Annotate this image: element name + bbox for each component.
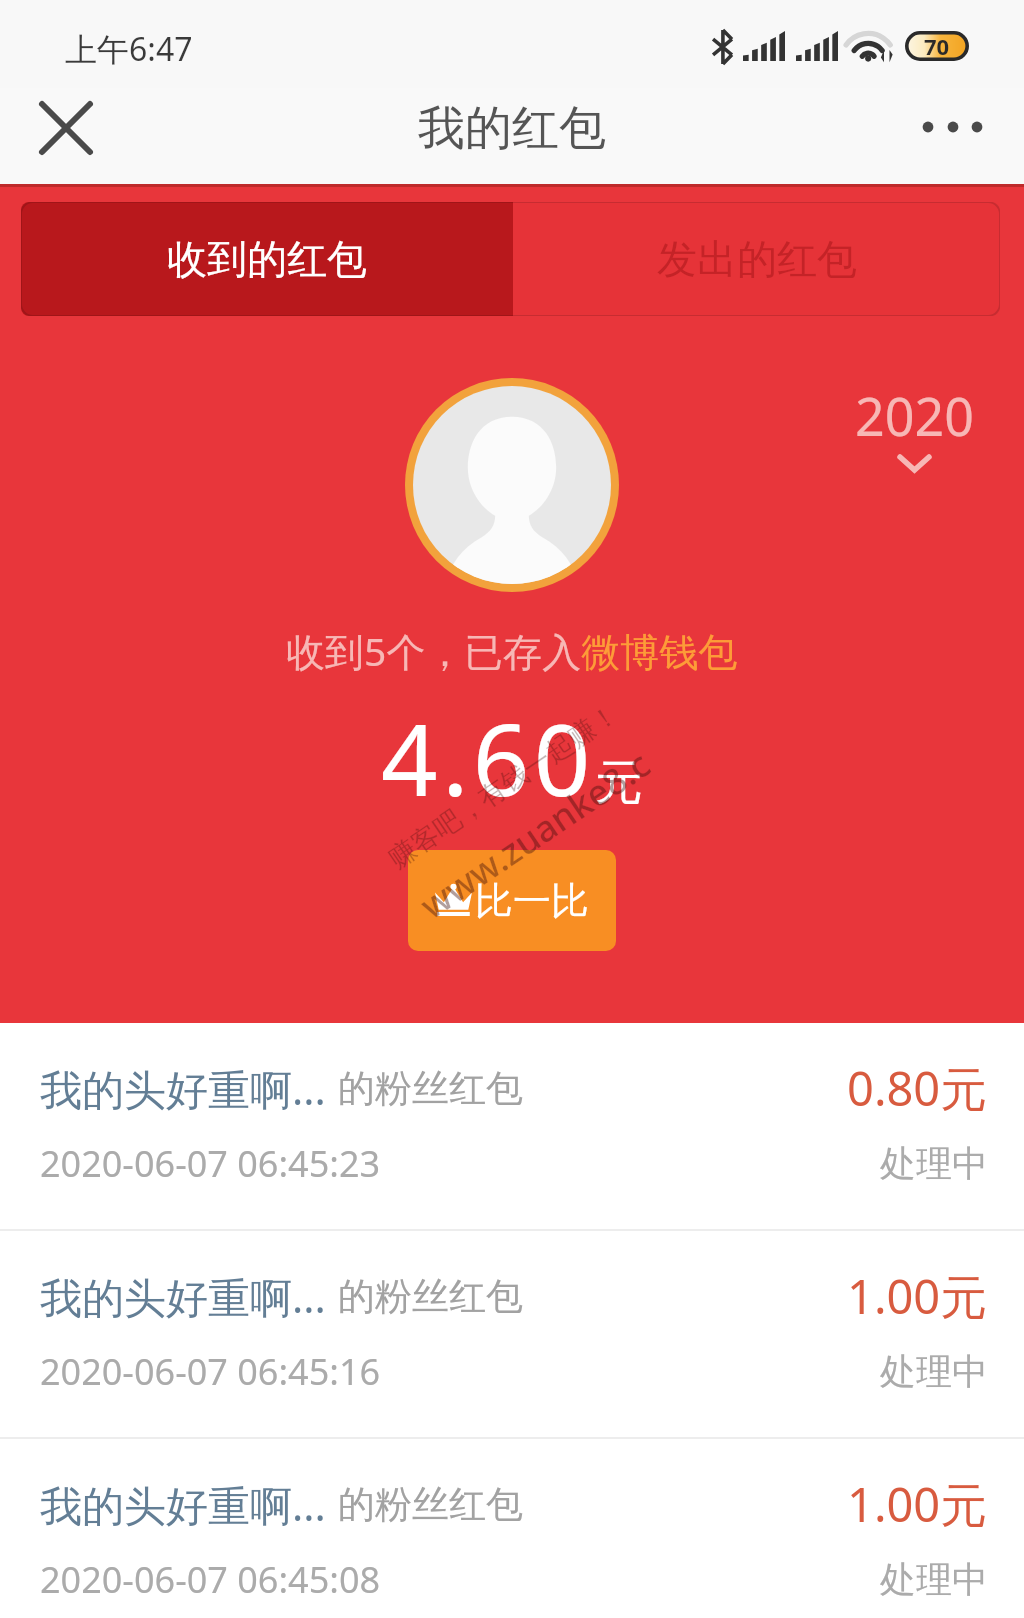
button[interactable]: 发出的红包 xyxy=(513,202,1000,316)
button[interactable]: Close xyxy=(22,88,110,176)
staticText: 我的头好重啊... xyxy=(40,1268,326,1325)
staticText: 2020-06-07 06:45:08 xyxy=(40,1555,381,1604)
staticText: 处理中 xyxy=(880,1349,988,1394)
staticText: 2020-06-07 06:45:23 xyxy=(40,1139,381,1188)
staticText: 的粉丝红包 xyxy=(338,1481,523,1528)
button[interactable]: 我的头好重啊... xyxy=(0,1231,1024,1437)
staticText: 元 xyxy=(595,753,643,813)
staticText: www.zuanke8.com xyxy=(410,735,666,930)
staticText: 1.00元 xyxy=(847,1472,988,1536)
staticText: 比一比 xyxy=(475,877,589,925)
staticText: 2020 xyxy=(855,380,974,451)
staticText: 我的红包 xyxy=(418,99,606,158)
staticText: 2020-06-07 06:45:16 xyxy=(40,1347,381,1396)
staticText: 的粉丝红包 xyxy=(338,1273,523,1320)
staticText: 赚客吧，有钱一起赚！ xyxy=(382,697,625,876)
button[interactable]: 我的头好重啊... xyxy=(0,1023,1024,1229)
staticText: 的粉丝红包 xyxy=(338,1065,523,1112)
staticText: 70 xyxy=(924,31,950,61)
button[interactable]: More options xyxy=(908,88,1000,184)
staticText: 0.80元 xyxy=(847,1056,988,1120)
staticText: 收到5个，已存入微博钱包 xyxy=(286,624,738,677)
staticText: 收到的红包 xyxy=(167,234,367,284)
button[interactable]: 收到的红包 xyxy=(21,202,513,316)
staticText: 处理中 xyxy=(880,1557,988,1602)
staticText: 我的头好重啊... xyxy=(40,1060,326,1117)
button[interactable]: 比一比 xyxy=(408,850,616,951)
staticText: 处理中 xyxy=(880,1141,988,1186)
button[interactable]: Profile avatar xyxy=(405,378,619,592)
staticText: 4.60 xyxy=(381,690,595,825)
button[interactable]: 2020 xyxy=(849,380,979,478)
staticText: 发出的红包 xyxy=(657,234,857,284)
staticText: 1.00元 xyxy=(847,1264,988,1328)
button[interactable]: 我的头好重啊... xyxy=(0,1439,1024,1618)
staticText: 我的头好重啊... xyxy=(40,1476,326,1533)
staticText: 上午6:47 xyxy=(65,27,193,71)
